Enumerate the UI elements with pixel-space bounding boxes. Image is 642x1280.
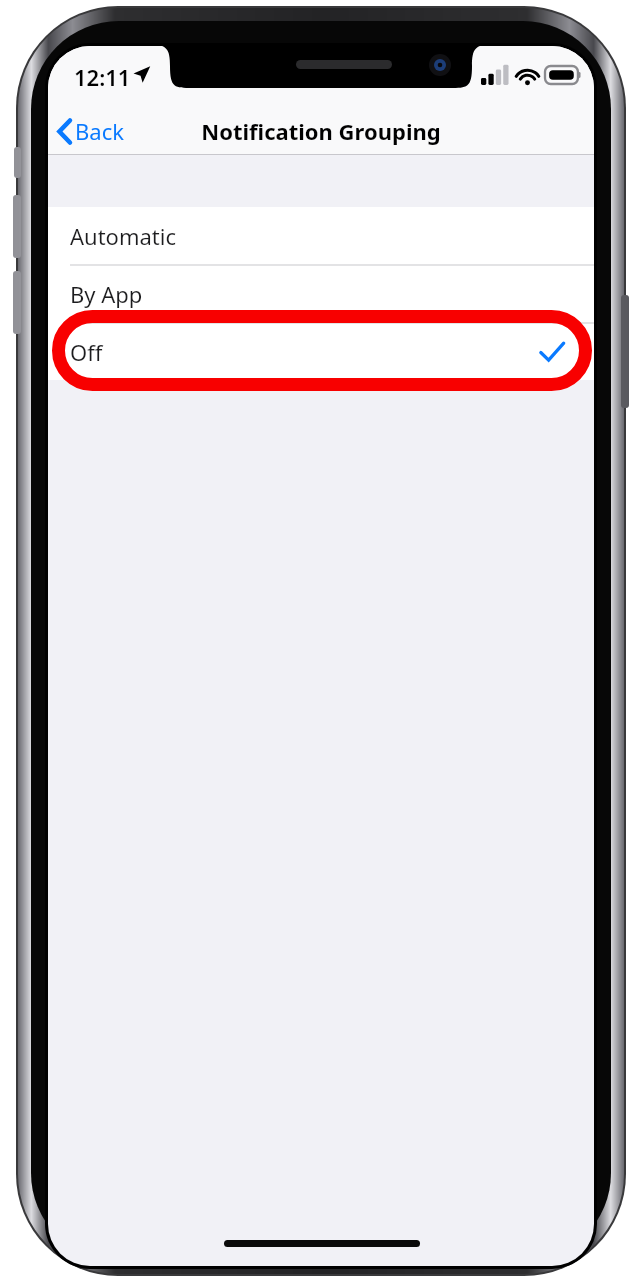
staticText: Notification Grouping <box>201 116 441 146</box>
other: Selected <box>539 339 565 365</box>
staticText: 12:11 <box>74 62 131 92</box>
staticText: Automatic <box>70 221 176 251</box>
staticText: Off <box>70 337 103 367</box>
staticText: Back <box>75 116 124 146</box>
button[interactable]: Off <box>48 323 594 381</box>
button[interactable]: Automatic <box>48 207 594 265</box>
button[interactable]: By App <box>48 265 594 323</box>
button[interactable]: Back <box>56 108 148 154</box>
staticText: By App <box>70 279 143 309</box>
